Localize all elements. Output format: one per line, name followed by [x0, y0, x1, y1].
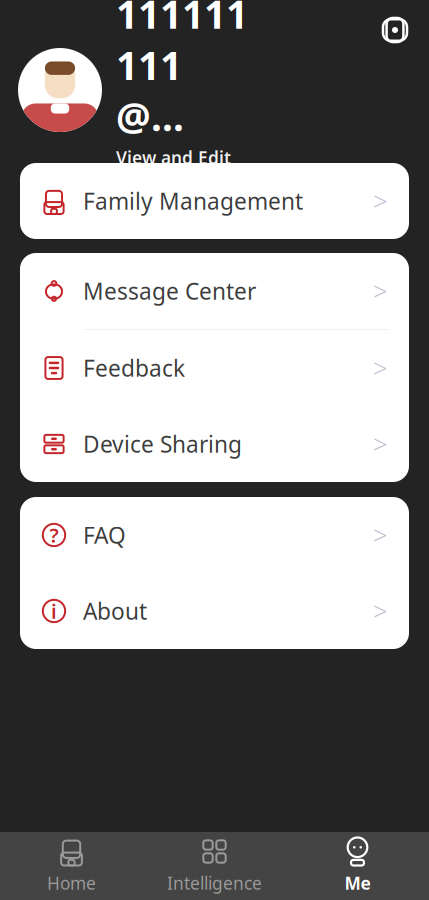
staticText: View and Edit Your Profile	[116, 146, 231, 192]
staticText: >	[373, 518, 387, 552]
staticText: Home	[47, 871, 96, 894]
staticText: 111111111 @...	[116, 0, 248, 142]
staticText: >	[373, 594, 387, 628]
staticText: i	[51, 598, 57, 624]
staticText: Feedback	[83, 353, 185, 383]
button[interactable]: i	[20, 573, 409, 649]
button[interactable]: Me	[286, 832, 429, 900]
button[interactable]: Feedback	[20, 330, 409, 406]
button[interactable]: Family Management	[20, 163, 409, 239]
staticText: Me	[344, 871, 370, 894]
staticText: Device Sharing	[83, 429, 242, 459]
button[interactable]: 111111111 @...	[0, 0, 429, 192]
button[interactable]: Home	[0, 832, 143, 900]
staticText: Family Management	[83, 186, 303, 216]
staticText: >	[373, 184, 387, 218]
staticText: Message Center	[83, 276, 256, 306]
staticText: >	[373, 274, 387, 308]
staticText: >	[373, 351, 387, 385]
button[interactable]: Settings	[373, 8, 417, 52]
staticText: Intelligence	[167, 871, 262, 894]
staticText: ?	[49, 522, 58, 548]
button[interactable]: ?	[20, 497, 409, 573]
button[interactable]: Intelligence	[143, 832, 286, 900]
staticText: >	[373, 427, 387, 461]
staticText: About	[83, 596, 147, 626]
button[interactable]: Device Sharing	[20, 406, 409, 482]
staticText: FAQ	[83, 520, 126, 550]
button[interactable]: Message Center	[20, 253, 409, 329]
